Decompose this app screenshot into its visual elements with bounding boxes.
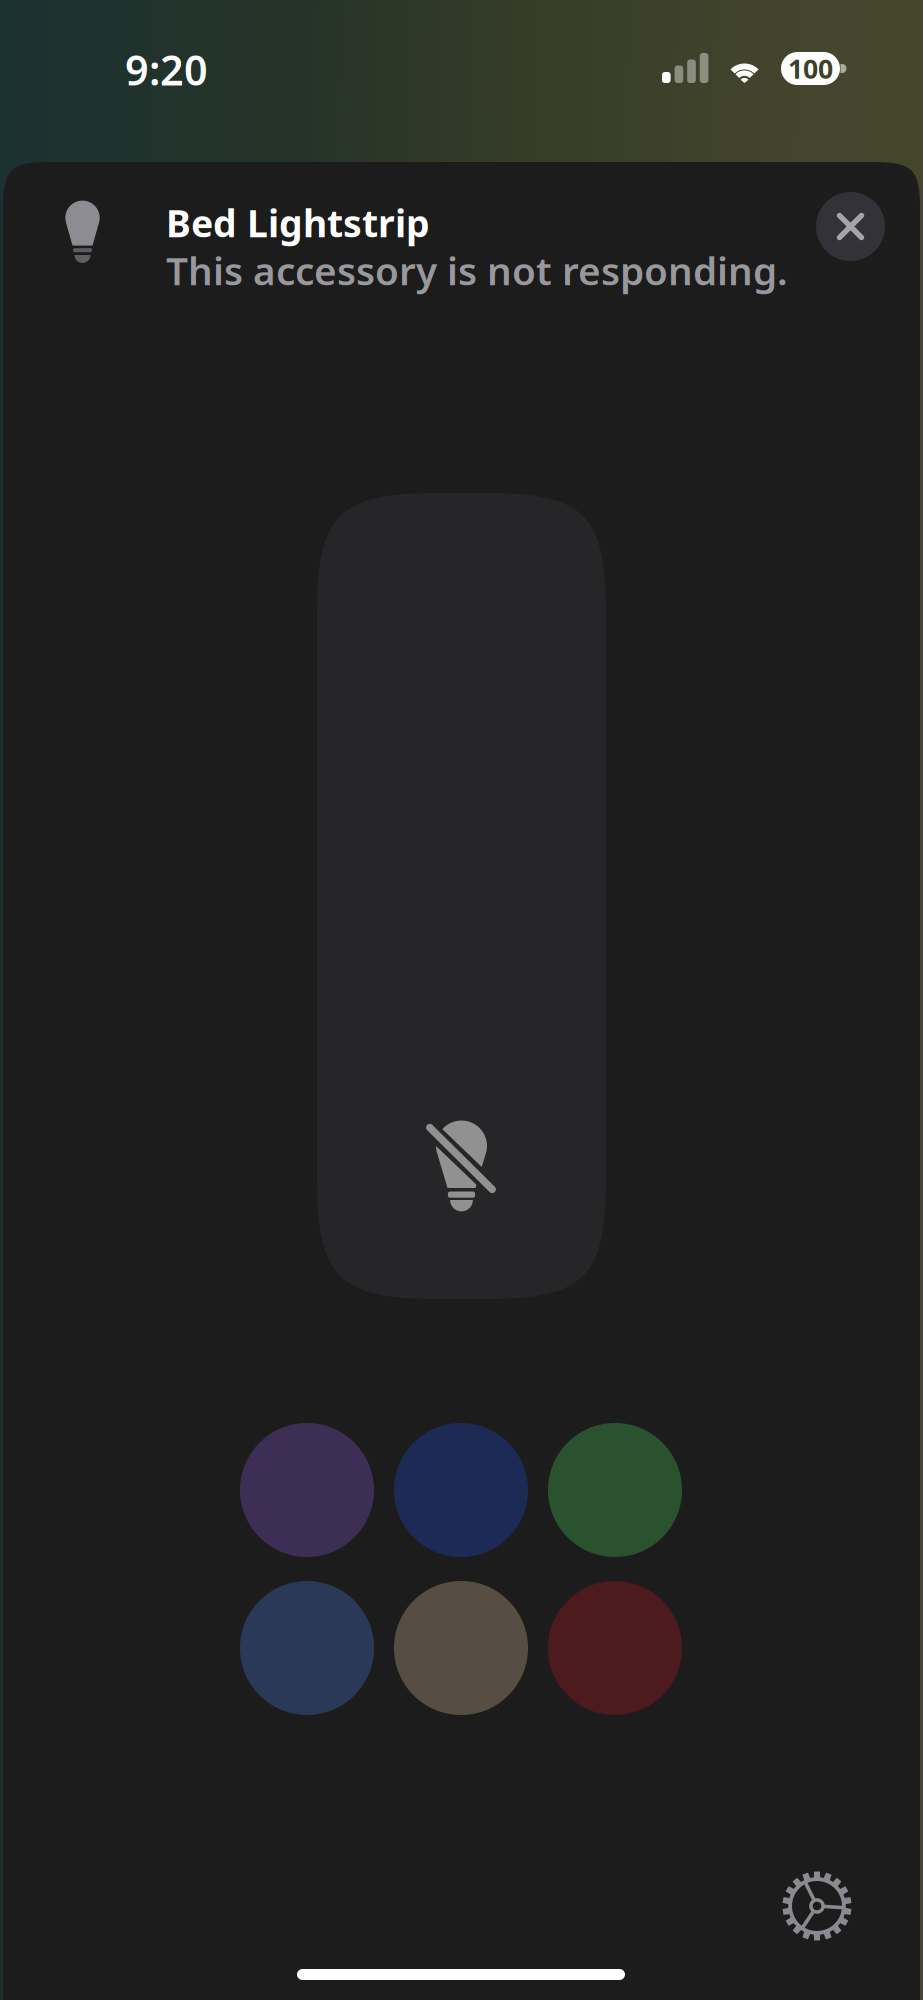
button[interactable]: Colour preset (394, 1581, 528, 1715)
staticText: This accessory is not responding. (166, 245, 788, 296)
staticText: 100 (788, 51, 833, 86)
button[interactable] (317, 493, 606, 1299)
button[interactable]: Colour preset (548, 1581, 682, 1715)
button[interactable]: Close (816, 192, 885, 261)
staticText: 9:20 (125, 42, 208, 97)
staticText: Bed Lightstrip (166, 198, 430, 248)
button[interactable]: Settings (764, 1853, 870, 1959)
button[interactable]: Colour preset (240, 1581, 374, 1715)
button[interactable]: Colour preset (240, 1423, 374, 1557)
button[interactable]: Colour preset (548, 1423, 682, 1557)
button[interactable]: Colour preset (394, 1423, 528, 1557)
